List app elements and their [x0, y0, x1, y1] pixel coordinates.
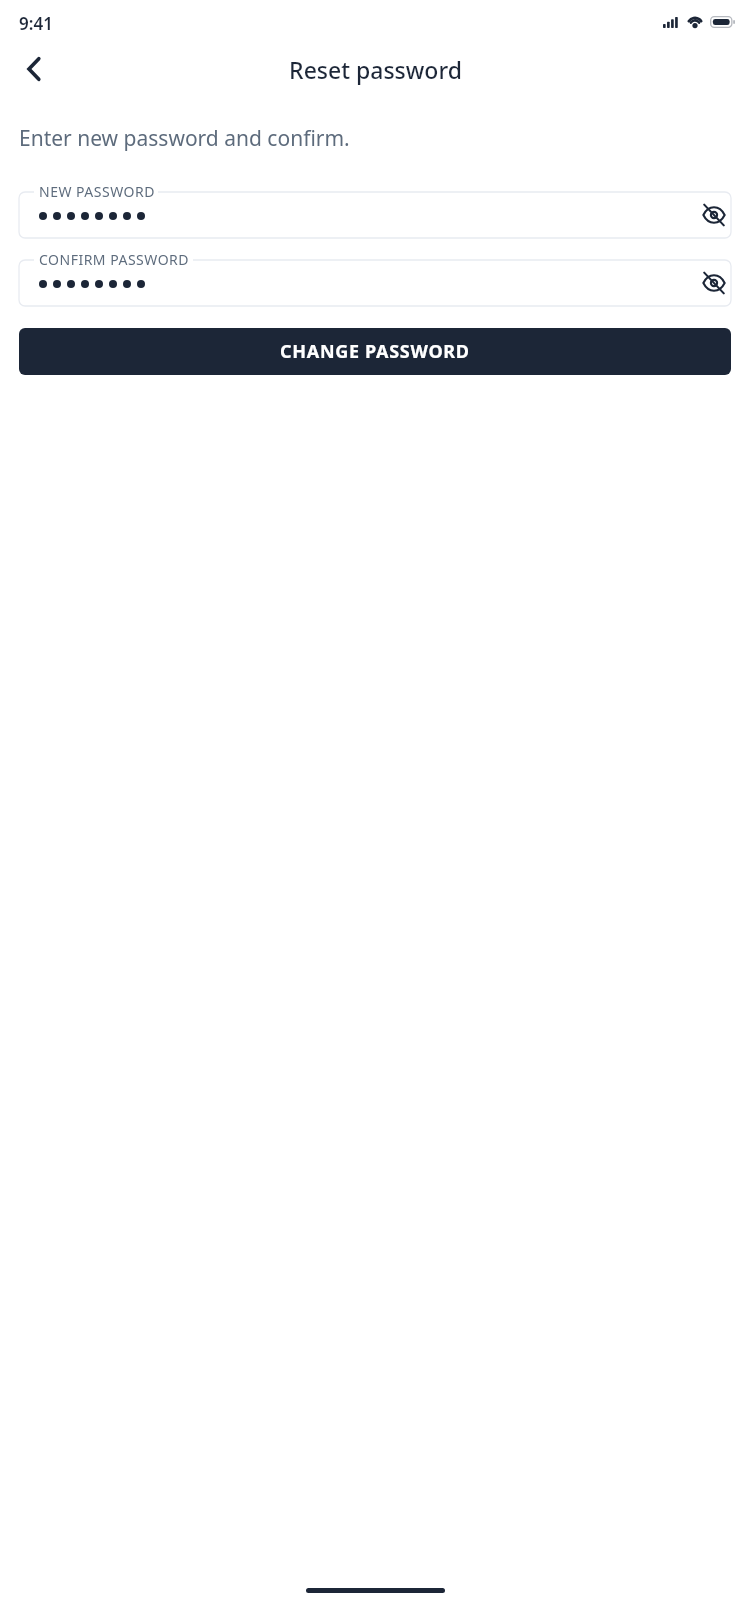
staticText: NEW PASSWORD: [39, 182, 155, 201]
button[interactable]: Show password: [691, 192, 737, 238]
button[interactable]: Show password: [691, 260, 737, 306]
button[interactable]: CHANGE PASSWORD: [19, 328, 731, 375]
staticText: Reset password: [289, 54, 462, 85]
staticText: Enter new password and confirm.: [19, 124, 350, 153]
staticText: CONFIRM PASSWORD: [39, 250, 190, 269]
button[interactable]: CONFIRM PASSWORD: [19, 260, 731, 306]
staticText: 9:41: [19, 12, 53, 35]
staticText: CHANGE PASSWORD: [280, 339, 470, 364]
button[interactable]: NEW PASSWORD: [19, 192, 731, 238]
button[interactable]: Back: [9, 44, 59, 94]
